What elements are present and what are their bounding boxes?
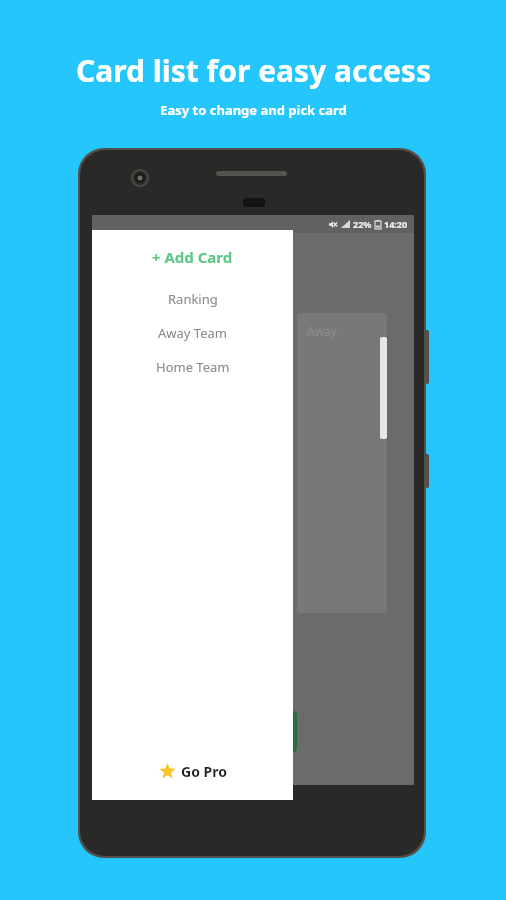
staticText: Away bbox=[307, 323, 337, 339]
staticText: Ranking bbox=[168, 290, 218, 308]
button[interactable]: Go Pro bbox=[151, 759, 235, 784]
button[interactable]: Home Team bbox=[92, 350, 293, 384]
staticText: 22% bbox=[353, 218, 372, 230]
staticText: 14:20 bbox=[384, 218, 408, 230]
staticText: Away Team bbox=[158, 324, 227, 342]
staticText: Easy to change and pick card bbox=[160, 101, 347, 119]
staticText: Home Team bbox=[156, 358, 230, 376]
staticText: + Add Card bbox=[152, 247, 233, 267]
button[interactable]: Ranking bbox=[92, 282, 293, 316]
button[interactable]: More options bbox=[222, 288, 289, 641]
button[interactable]: Add bbox=[200, 711, 297, 752]
button[interactable]: Away Team bbox=[92, 316, 293, 350]
staticText: Go Pro bbox=[181, 762, 227, 781]
staticText: Card list for easy access bbox=[76, 50, 431, 91]
button[interactable]: Away bbox=[297, 313, 387, 613]
button[interactable]: + Add Card bbox=[92, 242, 293, 272]
